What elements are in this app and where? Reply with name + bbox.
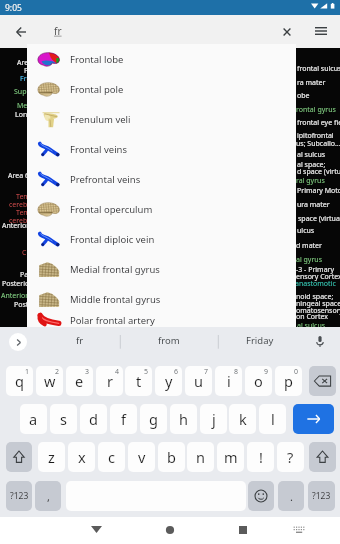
staticText: Frontal operculum (70, 203, 153, 216)
button[interactable]: Frontal pole (27, 74, 296, 104)
button[interactable]: x (68, 442, 95, 472)
staticText: ipitofrontal (297, 131, 340, 141)
button[interactable]: h (170, 404, 197, 434)
staticText: 0 (294, 367, 299, 377)
button[interactable]: Emoji (248, 481, 274, 511)
staticText: Prefrontal veins (70, 173, 141, 186)
staticText: Precentral gyrus (24, 66, 164, 76)
button[interactable]: r (96, 366, 123, 396)
button[interactable]: Frontal diploic vein (27, 224, 296, 254)
staticText: 5 (144, 367, 149, 377)
button[interactable]: Shift (309, 442, 336, 472)
button[interactable]: y (155, 366, 182, 396)
button[interactable]: ! (247, 442, 274, 472)
button[interactable]: n (187, 442, 214, 472)
button[interactable]: ?123 (6, 481, 32, 511)
button[interactable]: Polar frontal artery (27, 314, 296, 327)
button[interactable]: Frontal veins (27, 134, 296, 164)
staticText: 7 (204, 367, 209, 377)
staticText: anastomotic (295, 279, 340, 289)
button[interactable]: i (215, 366, 242, 396)
button[interactable]: Shift (6, 442, 32, 472)
staticText: Frenulum veli (70, 113, 131, 126)
staticText: 9 (264, 367, 269, 377)
button[interactable]: Navigate up (7, 16, 34, 47)
button[interactable]: v (128, 442, 155, 472)
button[interactable]: More options (307, 16, 334, 47)
button[interactable]: j (200, 404, 227, 434)
button[interactable]: Frontal operculum (27, 194, 296, 224)
button[interactable]: s (50, 404, 77, 434)
staticText: ningeal space (296, 299, 340, 309)
button[interactable]: Medial frontal gyrus (27, 254, 296, 284)
staticText: Friday (246, 334, 274, 347)
staticText: Posterior parietal artery (2, 279, 142, 289)
button[interactable]: Switch input method (284, 517, 314, 544)
button[interactable]: w (36, 366, 63, 396)
staticText: Posterior lobe (14, 300, 154, 310)
button[interactable]: e (66, 366, 93, 396)
button[interactable]: Show more suggestions (9, 333, 27, 351)
button[interactable]: q (6, 366, 33, 396)
button[interactable]: ?123 (308, 481, 335, 511)
button[interactable]: Backspace (309, 366, 336, 396)
staticText: m (224, 447, 238, 467)
staticText: b (167, 447, 176, 467)
staticText: al sulcus (297, 321, 340, 331)
button[interactable]: k (229, 404, 256, 434)
button[interactable]: Frenulum veli (27, 104, 296, 134)
button[interactable]: Clear query (274, 16, 301, 47)
staticText: c (108, 447, 115, 467)
button[interactable]: p (275, 366, 302, 396)
staticText: v (138, 447, 146, 467)
button[interactable]: g (140, 404, 167, 434)
button[interactable]: f (110, 404, 137, 434)
staticText: al sulcus (297, 150, 340, 160)
button[interactable]: fr (32, 327, 128, 354)
button[interactable]: Home (155, 517, 185, 544)
button[interactable]: t (125, 366, 152, 396)
staticText: t (136, 371, 142, 391)
button[interactable]: o (245, 366, 272, 396)
button[interactable]: d (80, 404, 107, 434)
button[interactable]: u (185, 366, 212, 396)
staticText: . (290, 489, 293, 504)
button[interactable]: l (259, 404, 286, 434)
button[interactable]: . (278, 481, 304, 511)
staticText: Tentorium cerebelli (16, 208, 156, 218)
button[interactable]: from (121, 327, 217, 354)
button[interactable]: Middle frontal gyrus (27, 284, 296, 314)
staticText: cerebral falx; dura (9, 216, 149, 226)
button[interactable]: z (38, 442, 65, 472)
button[interactable]: , (35, 481, 61, 511)
staticText: ura mater (297, 200, 340, 210)
button[interactable]: Prefrontal veins (27, 164, 296, 194)
staticText: Tentorium cerebelli (16, 192, 156, 202)
button[interactable]: a (20, 404, 47, 434)
staticText: omatosensory (296, 306, 340, 316)
button[interactable]: m (217, 442, 244, 472)
staticText: cerebral falx; dura (9, 200, 149, 210)
staticText: 9:05 (5, 2, 22, 14)
staticText: ra mater (297, 78, 340, 88)
staticText: y (165, 371, 173, 391)
button[interactable]: c (98, 442, 125, 472)
button[interactable]: Voice input (310, 330, 331, 351)
staticText: g (149, 409, 158, 429)
staticText: on Cortex (296, 312, 340, 322)
button[interactable]: b (158, 442, 185, 472)
button[interactable]: ? (277, 442, 304, 472)
staticText: d mater (296, 241, 340, 251)
staticText: ! (259, 447, 263, 467)
staticText: Frontal lobe (70, 53, 124, 66)
button[interactable]: Enter (293, 404, 334, 434)
button[interactable]: Frontal lobe (27, 44, 296, 74)
button[interactable]: Recent apps (228, 517, 258, 544)
staticText: rontal gyrus (296, 105, 340, 115)
staticText: obe (297, 91, 340, 101)
staticText: Anterior parietal artery (1, 291, 141, 301)
staticText: Medial frontal gyrus (17, 101, 157, 111)
button[interactable]: Hide keyboard (82, 517, 112, 544)
button[interactable]: Friday (219, 327, 301, 354)
